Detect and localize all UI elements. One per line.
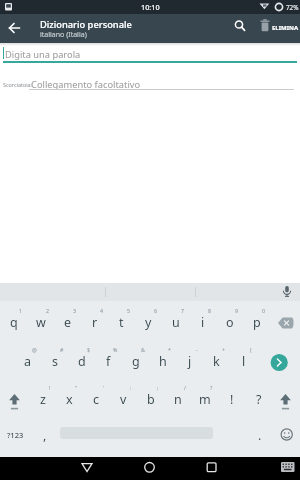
staticText: ? xyxy=(256,391,262,408)
staticText: 6 xyxy=(154,307,158,314)
button[interactable]: v xyxy=(110,380,137,418)
button[interactable] xyxy=(0,14,28,43)
staticText: ; xyxy=(157,384,159,391)
staticText: 1 xyxy=(19,307,23,314)
button[interactable]: s xyxy=(41,342,68,380)
button[interactable] xyxy=(135,457,164,480)
staticText: & xyxy=(141,346,145,353)
staticText: x xyxy=(66,391,73,408)
button[interactable]: y xyxy=(135,303,162,341)
button[interactable]: j xyxy=(176,342,203,380)
button[interactable]: ?123 xyxy=(0,416,30,454)
button[interactable]: t xyxy=(108,303,135,341)
button[interactable]: h xyxy=(149,342,176,380)
staticText: 5 xyxy=(127,307,131,314)
staticText: l xyxy=(242,353,246,370)
staticText: 10:10 xyxy=(141,2,160,12)
staticText: $ xyxy=(87,346,91,353)
button[interactable]: Collegamento facoltativo xyxy=(28,75,294,91)
staticText: Dizionario personale xyxy=(40,18,132,31)
button[interactable] xyxy=(0,380,29,418)
button[interactable]: , xyxy=(30,416,59,454)
button[interactable] xyxy=(197,457,226,480)
button[interactable]: o xyxy=(216,303,243,341)
button[interactable] xyxy=(73,457,101,480)
button[interactable]: i xyxy=(189,303,216,341)
button[interactable]: Digita una parola xyxy=(2,45,298,63)
staticText: g xyxy=(132,353,140,370)
button[interactable] xyxy=(273,416,300,454)
button[interactable]: b xyxy=(137,380,164,418)
staticText: t xyxy=(119,314,124,331)
button[interactable]: e xyxy=(54,303,81,341)
button[interactable] xyxy=(272,283,300,301)
button[interactable]: ! xyxy=(218,380,245,418)
staticText: ?123 xyxy=(7,430,24,440)
staticText: ! xyxy=(230,391,234,408)
staticText: z xyxy=(40,391,46,408)
staticText: @ xyxy=(32,346,37,353)
staticText: u xyxy=(172,314,180,331)
staticText: q xyxy=(10,314,18,331)
staticText: m xyxy=(199,391,211,408)
staticText: 9 xyxy=(235,307,239,314)
staticText: Digita una parola xyxy=(5,48,81,61)
staticText: 72% xyxy=(286,3,299,12)
staticText: s xyxy=(52,353,58,370)
button[interactable]: u xyxy=(162,303,189,341)
staticText: i xyxy=(201,314,205,331)
staticText: 4 xyxy=(100,307,104,314)
button[interactable]: f xyxy=(95,342,122,380)
staticText: 7 xyxy=(181,307,185,314)
staticText: w xyxy=(36,314,46,331)
button[interactable]: g xyxy=(122,342,149,380)
button[interactable]: q xyxy=(0,303,27,341)
button[interactable]: ELIMINA xyxy=(253,14,300,43)
staticText: j xyxy=(188,353,192,370)
staticText: ( xyxy=(250,346,252,353)
staticText: ? xyxy=(210,384,213,391)
staticText: k xyxy=(213,353,220,370)
button[interactable] xyxy=(257,342,300,380)
button[interactable] xyxy=(59,416,214,454)
staticText: # xyxy=(60,346,64,353)
staticText: ! xyxy=(49,384,51,391)
staticText: o xyxy=(226,314,234,331)
staticText: v xyxy=(120,391,127,408)
staticText: n xyxy=(174,391,182,408)
button[interactable]: p xyxy=(243,303,270,341)
staticText: % xyxy=(113,346,118,353)
button[interactable]: r xyxy=(81,303,108,341)
button[interactable]: z xyxy=(29,380,56,418)
staticText: " xyxy=(75,384,78,391)
button[interactable]: d xyxy=(68,342,95,380)
staticText: : xyxy=(130,384,132,391)
staticText: 2 xyxy=(46,307,50,314)
staticText: 8 xyxy=(208,307,212,314)
button[interactable]: m xyxy=(191,380,218,418)
button[interactable] xyxy=(228,14,252,43)
button[interactable] xyxy=(276,457,300,480)
staticText: italiano (Italia) xyxy=(40,30,87,40)
staticText: h xyxy=(159,353,167,370)
button[interactable]: n xyxy=(164,380,191,418)
staticText: . xyxy=(258,427,262,444)
staticText: d xyxy=(78,353,86,370)
button[interactable]: ? xyxy=(245,380,272,418)
staticText: 3 xyxy=(73,307,77,314)
button[interactable]: . xyxy=(246,416,273,454)
staticText: a xyxy=(24,353,32,370)
button[interactable]: w xyxy=(27,303,54,341)
button[interactable] xyxy=(271,380,300,418)
button[interactable]: k xyxy=(203,342,230,380)
staticText: 0 xyxy=(262,307,266,314)
staticText: y xyxy=(145,314,152,331)
staticText: ELIMINA xyxy=(272,24,299,32)
staticText: e xyxy=(64,314,72,331)
button[interactable]: l xyxy=(230,342,257,380)
button[interactable]: c xyxy=(83,380,110,418)
button[interactable]: x xyxy=(56,380,83,418)
button[interactable] xyxy=(270,303,300,341)
staticText: c xyxy=(93,391,100,408)
button[interactable]: a xyxy=(14,342,41,380)
